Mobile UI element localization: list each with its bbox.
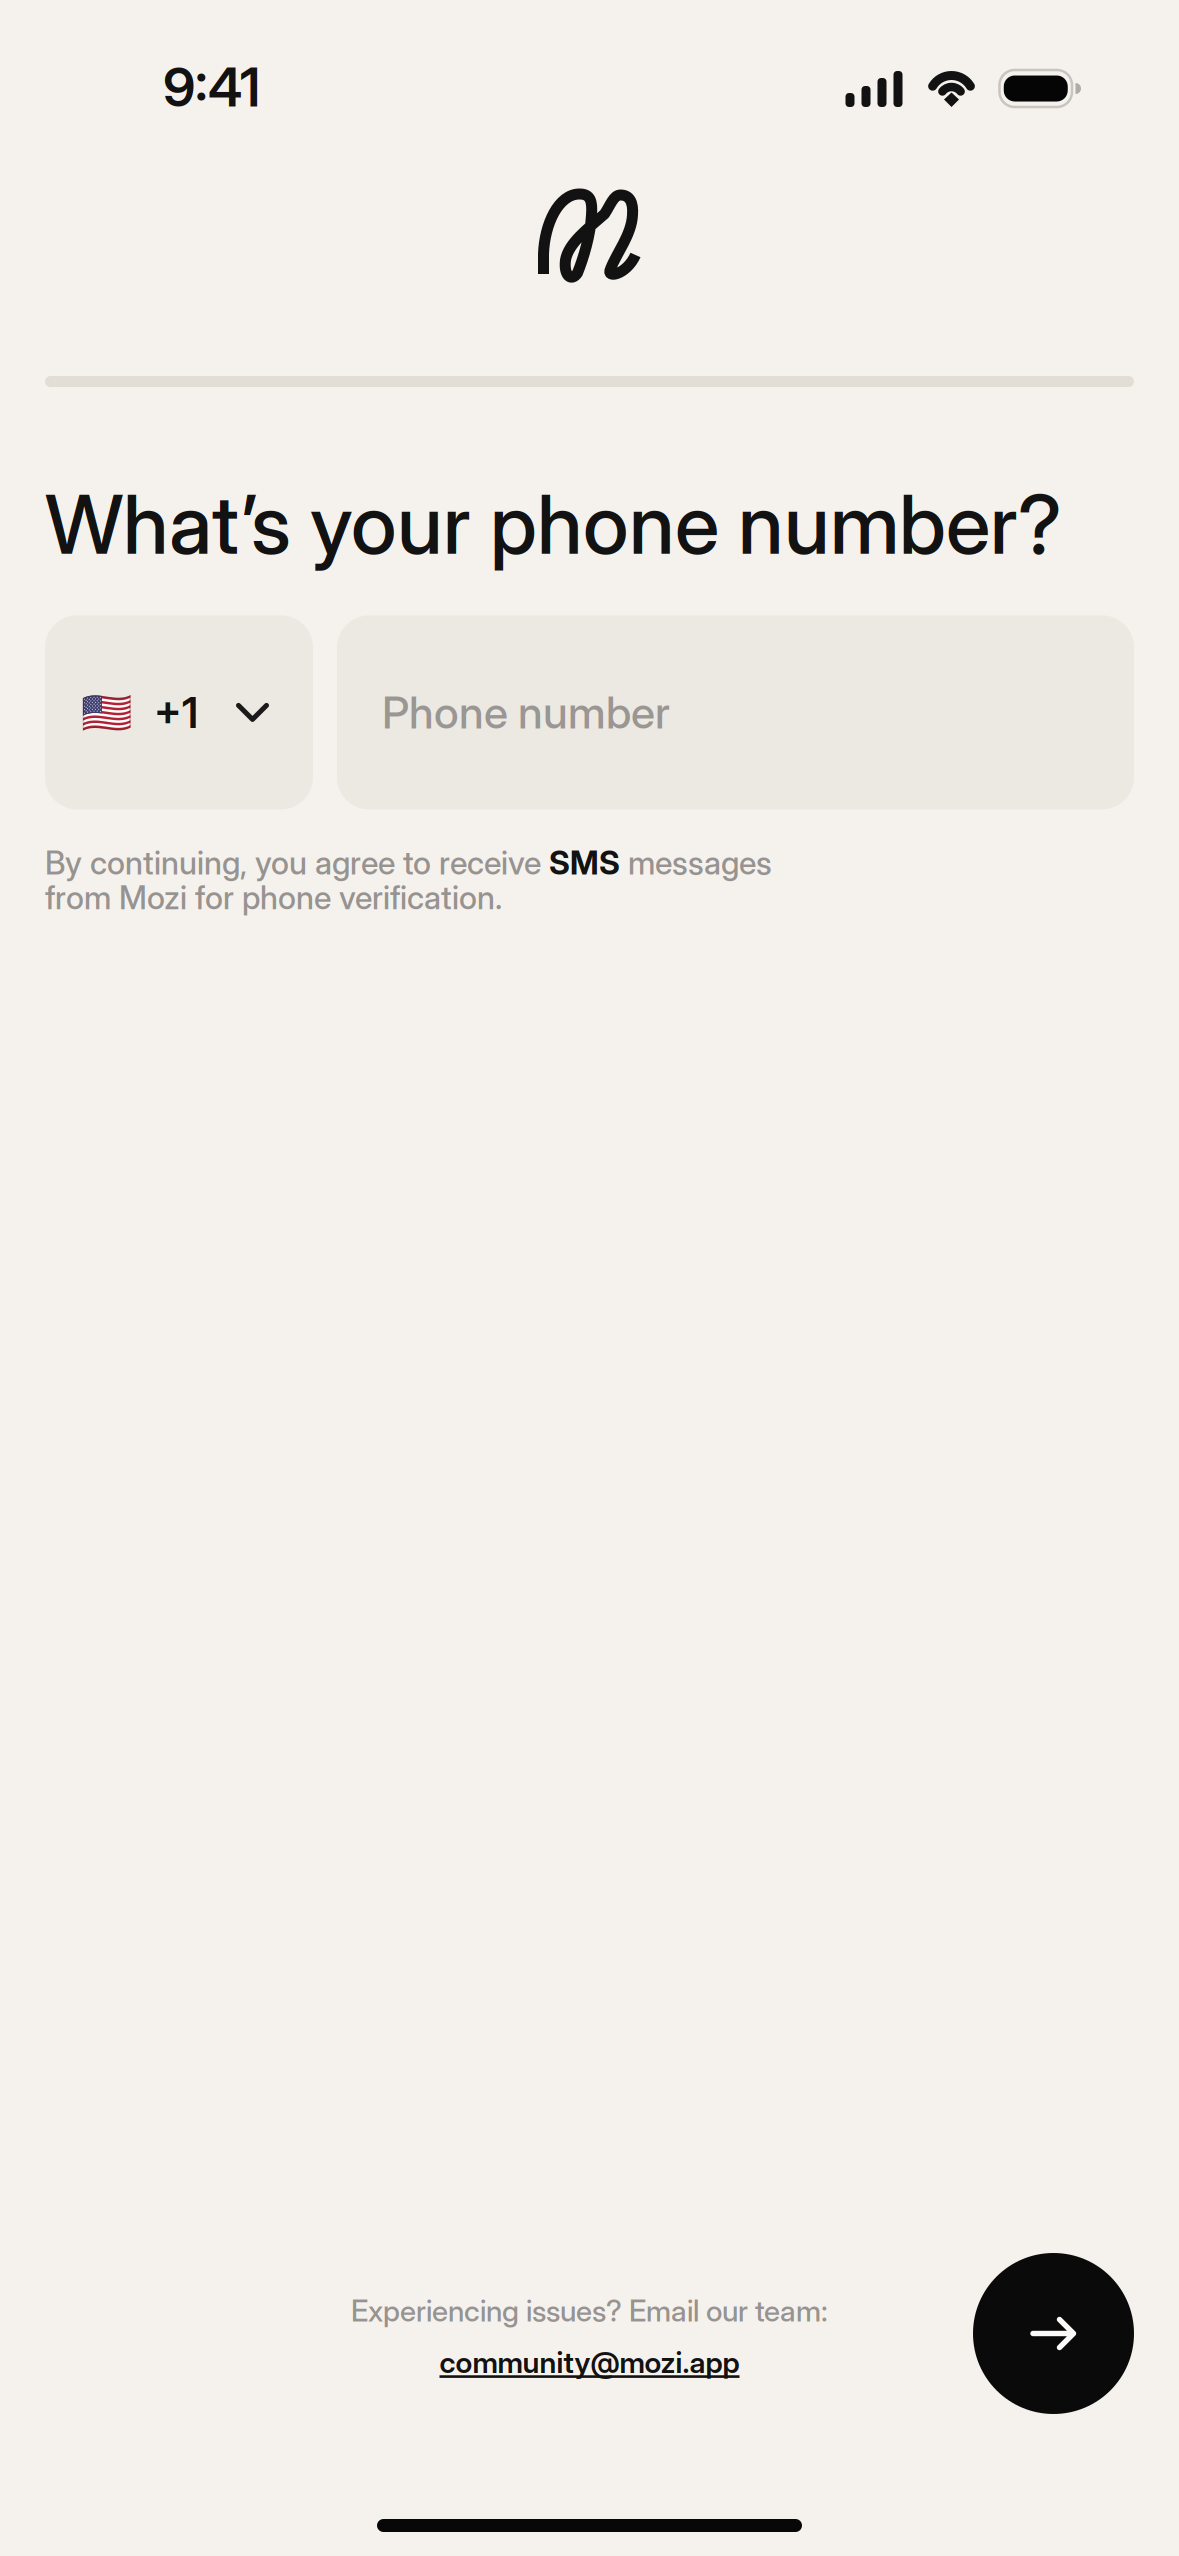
staticText: community@mozi.app [439, 2344, 739, 2380]
staticText: Experiencing issues? Email our team: [351, 2293, 828, 2328]
staticText: 🇺🇸 [80, 688, 131, 737]
button[interactable]: Country code, United States, plus 1 [45, 615, 313, 809]
button[interactable]: community@mozi.app [439, 2344, 739, 2380]
staticText: 9:41 [163, 55, 260, 119]
staticText: +1 [154, 687, 198, 738]
staticText: What’s your phone number? [45, 475, 1062, 573]
staticText: By continuing, you agree to receive SMS … [45, 843, 772, 917]
button[interactable]: Continue [973, 2253, 1134, 2414]
staticText: Phone number [382, 686, 670, 739]
button[interactable]: Phone number [337, 615, 1134, 809]
